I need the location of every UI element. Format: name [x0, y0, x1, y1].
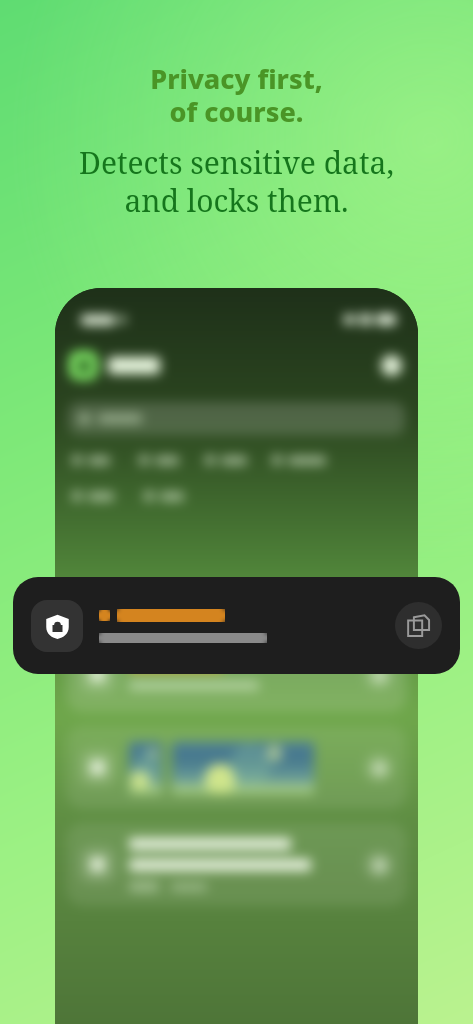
button[interactable]: Copy [395, 602, 442, 649]
staticText: Detects sensitive data, and locks them. [0, 142, 473, 221]
staticText: Privacy first, of course. [0, 60, 473, 130]
button[interactable]: Copy [13, 577, 460, 674]
